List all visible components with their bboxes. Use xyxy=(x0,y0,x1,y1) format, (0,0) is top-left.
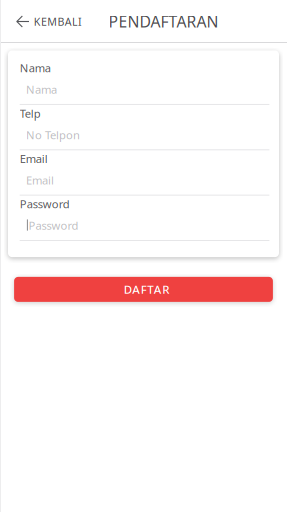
button[interactable]: KEMBALI xyxy=(0,0,92,43)
staticText: KEMBALI xyxy=(34,14,82,29)
staticText: PENDAFTARAN xyxy=(109,11,219,32)
staticText: DAFTAR xyxy=(124,282,169,297)
button[interactable]: DAFTAR xyxy=(14,277,273,302)
staticText: Password xyxy=(28,218,78,233)
staticText: Nama xyxy=(26,82,57,97)
staticText: Email xyxy=(20,151,48,166)
staticText: Nama xyxy=(20,60,51,76)
staticText: Telp xyxy=(20,106,41,121)
staticText: No Telpon xyxy=(26,127,80,142)
staticText: Password xyxy=(20,196,70,212)
staticText: Email xyxy=(26,172,54,188)
